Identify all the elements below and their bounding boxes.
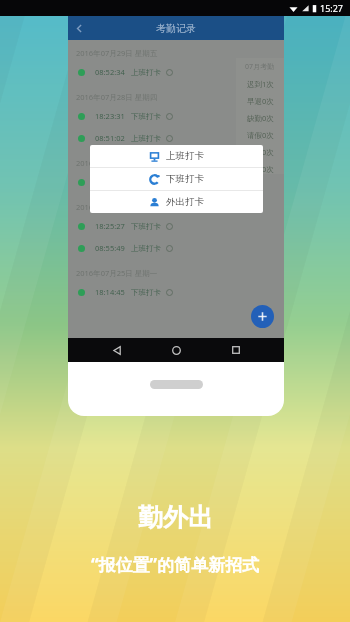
- staticText: 下班打卡: [131, 178, 161, 187]
- button[interactable]: Back: [68, 17, 90, 39]
- staticText: 08:51:02: [95, 133, 125, 143]
- staticText: 2016年07月27日 星期三: [76, 158, 158, 168]
- button[interactable]: 上班打卡: [90, 145, 263, 167]
- staticText: 18:14:45: [95, 287, 125, 297]
- staticText: 下班打卡: [166, 173, 204, 185]
- staticText: 2016年07月29日 星期五: [76, 48, 158, 58]
- button[interactable]: 08:51:02: [78, 127, 284, 149]
- button[interactable]: 08:55:49: [78, 237, 284, 259]
- staticText: 勤外出: [138, 502, 213, 533]
- staticText: “报位置”的简单新招式: [91, 553, 260, 576]
- staticText: 08:55:49: [95, 243, 125, 253]
- button[interactable]: 18:10:12: [78, 171, 284, 193]
- staticText: 2016年07月25日 星期一: [76, 268, 158, 278]
- staticText: 下班打卡: [131, 112, 161, 121]
- staticText: 外出打卡: [166, 196, 204, 208]
- staticText: 07月考勤: [245, 62, 275, 72]
- staticText: 出差0次: [247, 147, 274, 157]
- staticText: 外出0次: [247, 164, 274, 174]
- staticText: 2016年07月28日 星期四: [76, 92, 158, 102]
- staticText: 考勤记录: [156, 22, 196, 35]
- staticText: 上班打卡: [166, 150, 204, 162]
- staticText: 2016年07月26日 星期二: [76, 202, 158, 212]
- button[interactable]: 08:52:34: [78, 61, 284, 83]
- button[interactable]: 外出打卡: [90, 191, 263, 213]
- button[interactable]: Add record: [251, 305, 274, 328]
- staticText: 上班打卡: [131, 68, 161, 77]
- staticText: 迟到1次: [247, 79, 274, 89]
- button[interactable]: 18:14:45: [78, 281, 284, 303]
- staticText: 上班打卡: [131, 134, 161, 143]
- staticText: 下班打卡: [131, 222, 161, 231]
- button[interactable]: Back: [106, 339, 128, 361]
- button[interactable]: Home: [165, 339, 187, 361]
- staticText: 18:23:31: [95, 111, 125, 121]
- staticText: 早退0次: [247, 96, 274, 106]
- staticText: 08:52:34: [95, 67, 125, 77]
- staticText: 下班打卡: [131, 288, 161, 297]
- staticText: 18:25:27: [95, 221, 125, 231]
- button[interactable]: 18:23:31: [78, 105, 284, 127]
- button[interactable]: Home button: [150, 380, 203, 389]
- button[interactable]: 18:25:27: [78, 215, 284, 237]
- staticText: 上班打卡: [131, 244, 161, 253]
- button[interactable]: Recents: [225, 339, 247, 361]
- button[interactable]: 下班打卡: [90, 168, 263, 190]
- staticText: 15:27: [320, 2, 344, 14]
- staticText: 请假0次: [247, 130, 274, 140]
- staticText: 缺勤0次: [247, 113, 274, 123]
